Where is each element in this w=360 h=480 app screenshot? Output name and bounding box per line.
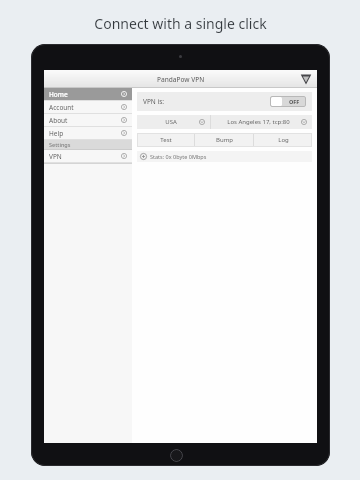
button[interactable]: About: [44, 114, 132, 126]
button[interactable]: Test: [137, 133, 194, 147]
other: Home: [170, 449, 183, 462]
staticText: OFF: [289, 98, 300, 105]
button[interactable]: PandaPow logo: [300, 73, 312, 85]
button[interactable]: Help: [44, 127, 132, 139]
staticText: Home: [49, 90, 68, 99]
button[interactable]: Log: [254, 133, 312, 147]
staticText: Test: [160, 136, 172, 144]
button[interactable]: Bump: [195, 133, 253, 147]
staticText: Settings: [49, 141, 71, 148]
staticText: Log: [278, 136, 289, 144]
button[interactable]: VPN toggle, off: [270, 96, 306, 107]
button[interactable]: Stats: 0x 0byte 0Mbps: [137, 151, 312, 162]
staticText: VPN: [49, 152, 62, 161]
staticText: Los Angeles 17, tcp:80: [227, 118, 290, 126]
staticText: USA: [165, 118, 177, 126]
staticText: PandaPow VPN: [157, 75, 205, 84]
staticText: Account: [49, 103, 74, 112]
button[interactable]: VPN is:: [137, 92, 312, 111]
button[interactable]: Account: [44, 101, 132, 113]
staticText: Bump: [216, 136, 233, 144]
button[interactable]: Los Angeles 17, tcp:80: [211, 115, 312, 129]
staticText: Help: [49, 129, 64, 138]
staticText: VPN is:: [143, 97, 164, 106]
button[interactable]: USA: [137, 115, 210, 129]
staticText: Connect with a single click: [94, 14, 267, 33]
staticText: Stats: 0x 0byte 0Mbps: [150, 153, 207, 160]
button[interactable]: VPN: [44, 150, 132, 162]
staticText: About: [49, 116, 68, 125]
button[interactable]: Home: [44, 88, 132, 100]
